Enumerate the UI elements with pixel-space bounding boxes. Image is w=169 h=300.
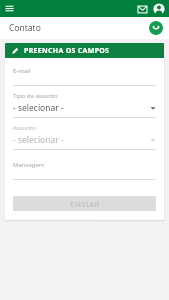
staticText: Tipo de assunto: [13, 92, 58, 100]
staticText: E-mail: [13, 67, 31, 75]
button[interactable]: E-mail: [5, 67, 164, 86]
staticText: Mensagem: [13, 161, 45, 169]
staticText: PREENCHA OS CAMPOS: [24, 46, 110, 56]
staticText: - selecionar -: [13, 134, 64, 146]
button[interactable]: Mensagem: [5, 156, 164, 180]
button[interactable]: Mail: [137, 4, 148, 15]
button[interactable]: Tipo de assunto: [5, 92, 164, 118]
button[interactable]: Menu: [3, 2, 16, 15]
button[interactable]: PREENCHA OS CAMPOS: [5, 43, 164, 58]
button[interactable]: Account: [153, 3, 165, 15]
staticText: - selecionar -: [13, 102, 64, 114]
button[interactable]: Call: [149, 21, 163, 35]
staticText: ENVIAR: [70, 199, 100, 209]
staticText: Contato: [9, 22, 41, 34]
button[interactable]: Assunto: [5, 124, 164, 150]
staticText: Assunto: [13, 124, 36, 132]
button[interactable]: ENVIAR: [13, 196, 156, 211]
